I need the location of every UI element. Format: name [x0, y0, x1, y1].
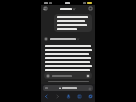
- button[interactable]: [54, 14, 92, 32]
- button[interactable]: Bookmarks: [76, 93, 82, 99]
- button[interactable]: Tabs: [87, 93, 93, 99]
- button[interactable]: [60, 8, 75, 10]
- other: Page settings: [45, 87, 48, 89]
- button[interactable]: Reload page: [88, 87, 91, 90]
- button[interactable]: Back: [43, 93, 49, 99]
- button[interactable]: New chat: [88, 6, 93, 11]
- button[interactable]: Share: [65, 93, 71, 99]
- button[interactable]: Voice input: [86, 74, 90, 78]
- button[interactable]: Forward: [54, 93, 60, 99]
- button[interactable]: [44, 37, 92, 41]
- button[interactable]: Page settings: [43, 85, 93, 91]
- button[interactable]: Voice input: [44, 72, 92, 79]
- button[interactable]: Open sidebar: [43, 6, 48, 11]
